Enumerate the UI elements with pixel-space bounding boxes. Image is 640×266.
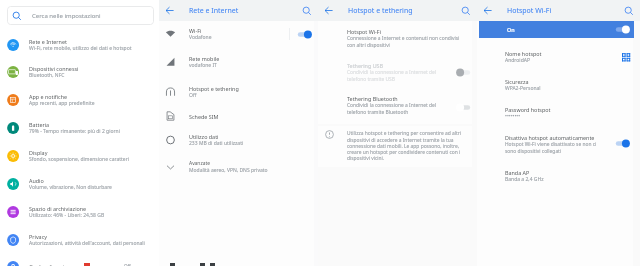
button[interactable]: Utilizzo dati (159, 128, 318, 152)
button[interactable]: Audio (0, 170, 159, 198)
button[interactable]: Cerca (624, 6, 634, 16)
staticText: 233 MB di dati utilizzati (189, 140, 244, 147)
button[interactable]: Off (456, 103, 472, 112)
button[interactable]: Cerca nelle impostazioni (7, 6, 154, 25)
staticText: Rete e Internet (29, 38, 67, 45)
button[interactable]: Privacy (0, 226, 159, 254)
button[interactable]: Nome hotspot (477, 50, 632, 72)
staticText: Rete mobile (189, 55, 220, 62)
staticText: Condividi la connessione a Internet del … (347, 69, 437, 82)
button[interactable]: Indietro (163, 4, 176, 17)
staticText: Wi-Fi, rete mobile, utilizzo dei dati e … (29, 45, 132, 52)
staticText: Display (29, 149, 48, 156)
staticText: •••••••• (505, 113, 521, 120)
button[interactable]: Rete mobile (159, 50, 318, 74)
staticText: Sfondo, sospensione, dimensione caratter… (29, 156, 130, 163)
staticText: AndroidAP (505, 57, 530, 64)
button[interactable]: Tethering Bluetooth (318, 92, 472, 120)
button[interactable]: Off (456, 68, 472, 77)
staticText: Wi-Fi (189, 27, 202, 34)
staticText: Hotspot e tethering (189, 85, 239, 92)
button[interactable]: Avanzate (159, 155, 318, 179)
button[interactable]: Geolocalizzazione (0, 262, 159, 266)
staticText: 79% - Tempo rimanente: più di 2 giorni (29, 128, 120, 135)
staticText: Banda AP (505, 169, 530, 176)
button[interactable]: On (296, 30, 312, 39)
button[interactable]: Display (0, 142, 159, 170)
staticText: Privacy (29, 233, 47, 240)
staticText: vodafone IT (189, 62, 217, 69)
staticText: Volume, vibrazione, Non disturbare (29, 184, 112, 191)
staticText: Audio (29, 177, 44, 184)
staticText: Utilizzo dati (189, 133, 219, 140)
staticText: Bluetooth, NFC (29, 72, 65, 79)
button[interactable]: Sicurezza (477, 78, 632, 100)
staticText: Banda a 2,4 GHz (505, 176, 544, 183)
staticText: App recenti, app predefinite (29, 100, 95, 107)
staticText: Sicurezza (505, 78, 529, 85)
staticText: Modalità aereo, VPN, DNS privato (189, 167, 268, 174)
staticText: Nome hotspot (505, 50, 542, 57)
staticText: WPA2-Personal (505, 85, 541, 92)
staticText: Hotspot Wi-Fi viene disattivato se non c… (505, 141, 597, 154)
button[interactable]: Wi-Fi (159, 22, 318, 46)
button[interactable]: Indietro (322, 4, 335, 17)
staticText: Hotspot Wi-Fi (347, 28, 382, 35)
staticText: Rete e Internet (189, 6, 239, 16)
button[interactable]: Disattiva hotspot automaticamente (477, 134, 632, 156)
staticText: Off (189, 92, 197, 99)
button[interactable]: Cerca (461, 6, 471, 16)
staticText: Off (124, 263, 131, 266)
staticText: Utilizzato: 46% - Liberi: 24,58 GB (29, 212, 105, 219)
staticText: Avanzate (189, 160, 210, 167)
button[interactable]: On (614, 139, 630, 148)
button[interactable]: Cerca (302, 6, 312, 16)
staticText: Tethering Bluetooth (347, 95, 398, 102)
button[interactable]: Password hotspot (477, 106, 632, 128)
staticText: Tethering USB (347, 62, 384, 69)
staticText: Vodafone (189, 34, 212, 41)
button[interactable]: Indietro (481, 4, 494, 17)
button[interactable]: Rete e Internet (0, 31, 159, 59)
staticText: Cerca nelle impostazioni (32, 12, 101, 20)
staticText: App e notifiche (29, 93, 68, 100)
button[interactable]: Codice QR (621, 52, 631, 62)
button[interactable]: Dispositivi connessi (0, 58, 159, 86)
staticText: Disattiva hotspot automaticamente (505, 134, 595, 141)
button[interactable]: On (479, 21, 634, 38)
staticText: Autorizzazioni, attività dell'account, d… (29, 240, 145, 247)
staticText: Schede SIM (189, 113, 219, 120)
button[interactable]: Tethering USB (318, 59, 472, 87)
button[interactable]: Banda AP (477, 169, 632, 191)
button[interactable]: App e notifiche (0, 86, 159, 114)
staticText: Connessione a Internet e contenuti non c… (347, 35, 460, 48)
staticText: Password hotspot (505, 106, 551, 113)
staticText: Dispositivi connessi (29, 65, 79, 72)
staticText: Utilizza hotspot e tethering per consent… (347, 130, 468, 161)
button[interactable]: Batteria (0, 114, 159, 142)
button[interactable]: On (614, 25, 630, 34)
button[interactable]: Hotspot e tethering (159, 80, 318, 104)
staticText: Geolocalizzazione (29, 263, 74, 266)
staticText: Condividi la connessione a Internet del … (347, 102, 437, 115)
staticText: Hotspot Wi-Fi (507, 6, 552, 16)
button[interactable]: Hotspot Wi-Fi (318, 24, 472, 53)
staticText: On (507, 26, 515, 33)
staticText: Hotspot e tethering (348, 6, 413, 16)
button[interactable]: Spazio di archiviazione (0, 198, 159, 226)
staticText: Spazio di archiviazione (29, 205, 87, 212)
button[interactable]: Schede SIM (159, 104, 318, 128)
staticText: Batteria (29, 121, 50, 128)
